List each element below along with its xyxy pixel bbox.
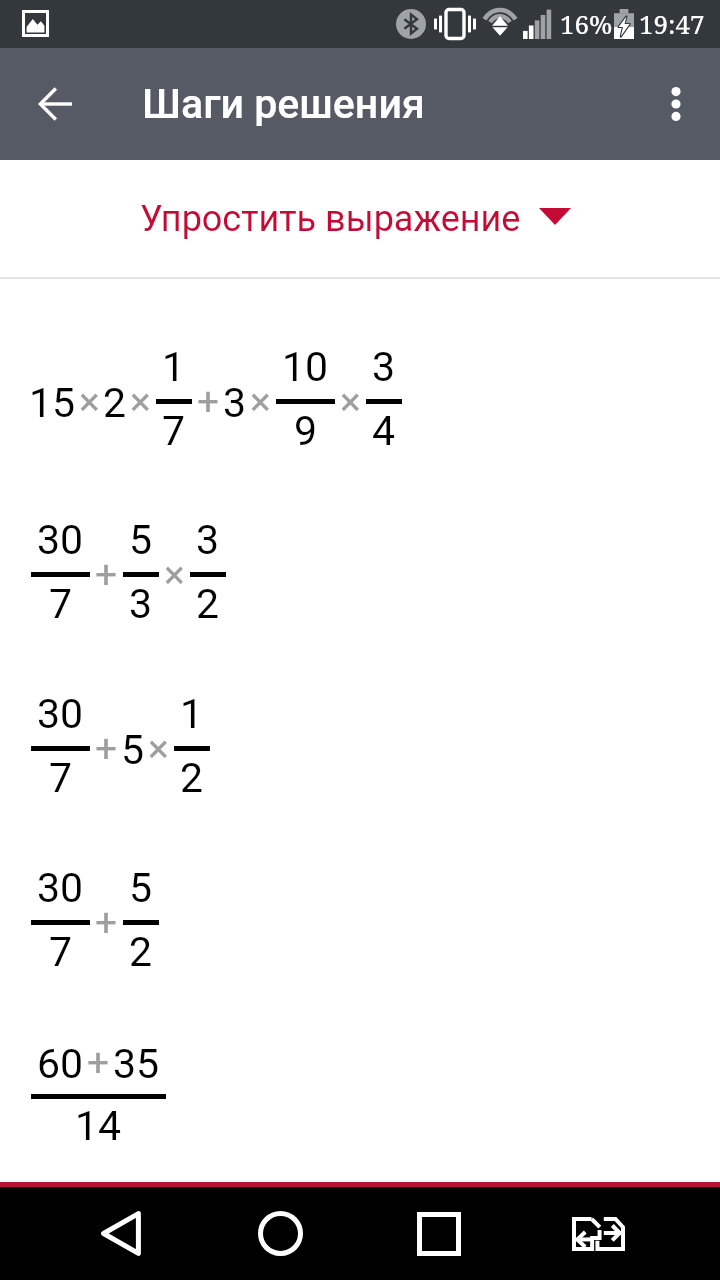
staticText: Шаги решения [142, 80, 425, 128]
staticText: 5 [129, 516, 153, 564]
staticText: 30 [37, 690, 84, 738]
staticText: 30 [37, 864, 84, 912]
button[interactable]: Back [24, 72, 88, 136]
staticText: × [250, 379, 271, 423]
staticText: 7 [162, 407, 186, 455]
staticText: 10 [282, 343, 329, 391]
staticText: 2 [129, 928, 153, 976]
staticText: 3 [129, 580, 153, 628]
button[interactable]: Back [61, 1187, 181, 1280]
staticText: × [164, 552, 185, 596]
staticText: × [79, 379, 100, 423]
staticText: 5 [129, 864, 153, 912]
staticText: 19:47 [639, 6, 705, 41]
staticText: 2 [103, 379, 127, 423]
staticText: 1 [162, 343, 186, 391]
staticText: 14 [75, 1102, 122, 1150]
staticText: 4 [372, 407, 396, 455]
staticText: 9 [294, 407, 318, 455]
staticText: × [340, 379, 361, 423]
staticText: + [95, 552, 118, 596]
staticText: 35 [113, 1040, 160, 1084]
staticText: 15 [29, 379, 76, 423]
staticText: 3 [196, 516, 220, 564]
staticText: + [197, 379, 220, 423]
button[interactable]: Recent apps [379, 1187, 499, 1280]
staticText: 7 [49, 754, 73, 802]
staticText: 3 [372, 343, 396, 391]
staticText: + [95, 726, 118, 770]
staticText: 1 [180, 690, 204, 738]
staticText: 3 [223, 379, 247, 423]
staticText: 2 [180, 754, 204, 802]
staticText: Упростить выражение [140, 198, 521, 240]
staticText: × [148, 726, 169, 770]
staticText: 30 [37, 516, 84, 564]
button[interactable]: Home [220, 1187, 340, 1280]
staticText: + [87, 1040, 110, 1084]
staticText: 16% [560, 6, 613, 41]
staticText: × [130, 379, 151, 423]
staticText: 60 [37, 1040, 84, 1084]
staticText: + [95, 900, 118, 944]
button[interactable]: More options [644, 72, 708, 136]
staticText: 7 [49, 928, 73, 976]
button[interactable]: Упростить выражение [0, 160, 720, 277]
staticText: 5 [121, 726, 145, 770]
staticText: 7 [49, 580, 73, 628]
button[interactable]: Switch screen [538, 1187, 658, 1280]
staticText: 2 [196, 580, 220, 628]
